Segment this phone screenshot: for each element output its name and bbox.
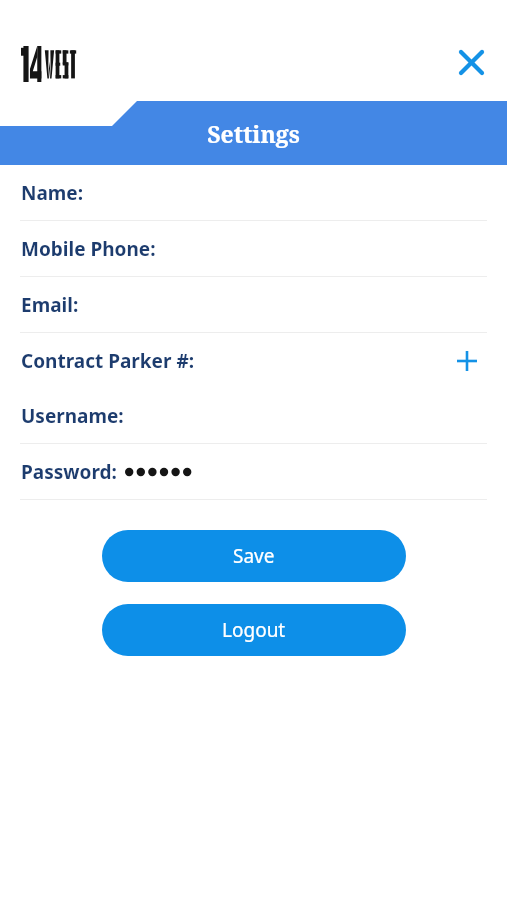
button[interactable]: Password: xyxy=(0,444,507,499)
staticText: Username: xyxy=(21,403,124,429)
button[interactable]: Mobile Phone: xyxy=(0,221,507,276)
button[interactable]: Name: xyxy=(0,165,507,220)
button[interactable]: Email: xyxy=(0,277,507,332)
staticText: Name: xyxy=(21,180,84,206)
staticText: Email: xyxy=(21,292,79,318)
staticText: Mobile Phone: xyxy=(21,236,156,262)
staticText: Password: xyxy=(21,459,117,485)
button[interactable]: Save xyxy=(102,530,406,582)
button[interactable]: Logout xyxy=(102,604,406,656)
staticText: Save xyxy=(233,543,275,569)
button[interactable]: Contract Parker #: xyxy=(0,333,507,388)
staticText: Logout xyxy=(222,617,286,643)
button[interactable]: Add contract parker number xyxy=(448,342,486,380)
staticText: Contract Parker #: xyxy=(21,348,194,374)
button[interactable]: Username: xyxy=(0,388,507,443)
staticText: Settings xyxy=(0,118,507,149)
button[interactable]: Close xyxy=(448,39,494,85)
